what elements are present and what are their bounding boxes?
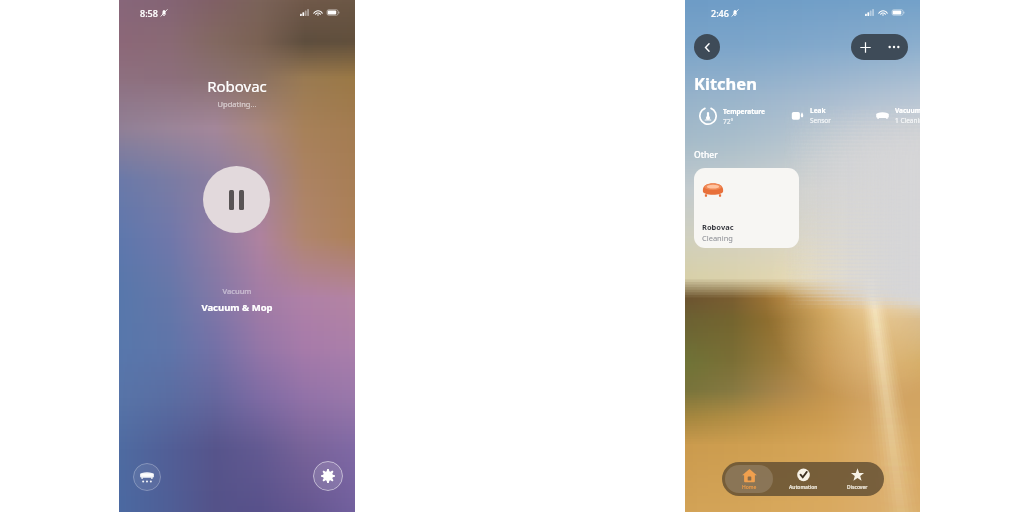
staticText: Other	[694, 149, 718, 161]
button[interactable]: Robovac	[694, 168, 799, 248]
staticText: Temperature	[723, 107, 765, 116]
staticText: 2:46	[711, 7, 729, 19]
staticText: 8:58	[140, 7, 158, 19]
staticText: Robovac	[702, 222, 734, 232]
staticText: 72°	[723, 117, 734, 126]
staticText: Leak	[810, 106, 826, 115]
button[interactable]: Automation	[779, 465, 827, 493]
staticText: Updating...	[119, 99, 355, 109]
staticText: Cleaning	[702, 233, 733, 243]
button[interactable]: Discover	[833, 465, 881, 493]
staticText: 1 Cleaning	[895, 116, 920, 125]
staticText: Kitchen	[694, 72, 757, 94]
button[interactable]: Robot vacuum	[133, 463, 161, 491]
staticText: Automation	[789, 484, 818, 491]
button[interactable]: Pause	[203, 166, 270, 233]
staticText: Vacuum & Mop	[119, 301, 355, 314]
staticText: Vacuum	[895, 106, 920, 115]
staticText: Sensor	[810, 116, 831, 125]
staticText: Vacuum	[119, 286, 355, 296]
staticText: Discover	[847, 484, 868, 491]
button[interactable]: Home	[725, 465, 773, 493]
button[interactable]: Settings	[313, 461, 343, 491]
button[interactable]: Back	[694, 34, 720, 60]
staticText: Home	[742, 484, 757, 491]
button[interactable]: More options	[879, 34, 908, 60]
staticText: Robovac	[119, 76, 355, 96]
button[interactable]: Add device	[851, 34, 879, 60]
